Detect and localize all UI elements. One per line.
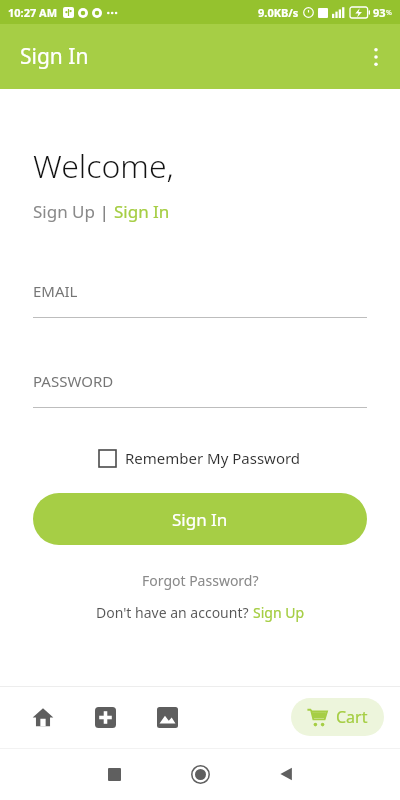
staticText: PASSWORD [33,371,114,391]
staticText: 93 [373,5,386,20]
staticText: | [95,200,114,223]
button[interactable]: Forgot Password? [142,571,259,590]
staticText: % [386,8,392,18]
button[interactable]: Recents [84,748,144,800]
staticText: Sign In [20,42,89,71]
staticText: Sign Up [33,200,95,223]
button[interactable]: Sign In [33,493,367,545]
staticText: Don't have an account? [96,603,253,622]
staticText: 10:27 AM [8,5,58,20]
button[interactable]: Sign In [114,200,170,223]
button[interactable]: Sign Up [253,603,305,622]
button[interactable]: Cart [291,698,384,736]
staticText: 9.0KB/s [258,5,299,20]
staticText: Sign In [114,200,170,223]
button[interactable]: Sign Up [33,200,95,223]
button[interactable]: More options [352,33,400,81]
button[interactable]: Home [12,689,74,745]
staticText: Forgot Password? [142,571,259,590]
button[interactable]: Home [170,748,230,800]
button[interactable]: Back [256,748,316,800]
staticText: Cart [336,706,368,728]
staticText: Sign In [172,508,228,531]
staticText: Remember My Password [125,448,301,468]
staticText: Sign Up [253,603,305,622]
button[interactable]: Remember My Password [99,448,301,468]
staticText: Welcome, [33,144,174,188]
button[interactable]: Add [74,689,136,745]
button[interactable]: Gallery [136,689,198,745]
staticText: EMAIL [33,281,78,301]
